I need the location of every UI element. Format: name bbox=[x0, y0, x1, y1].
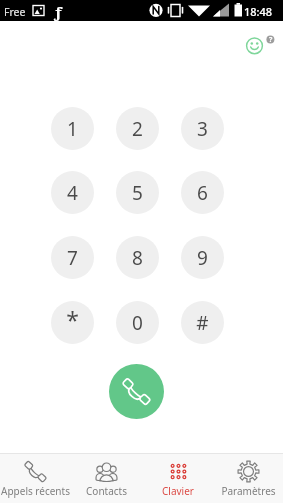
staticText: 0 bbox=[132, 310, 143, 336]
button[interactable]: Clavier bbox=[142, 454, 213, 503]
button[interactable]: # bbox=[181, 301, 224, 344]
button[interactable]: 0 bbox=[116, 301, 159, 344]
button[interactable]: Envoyer un avis bbox=[243, 33, 279, 69]
staticText: ? bbox=[269, 35, 273, 45]
staticText: 7 bbox=[67, 245, 78, 271]
button[interactable]: 6 bbox=[181, 171, 224, 214]
staticText: 5 bbox=[132, 180, 143, 206]
button[interactable]: * bbox=[51, 301, 94, 344]
button[interactable]: 2 bbox=[116, 107, 159, 150]
staticText: # bbox=[196, 310, 209, 336]
staticText: 8 bbox=[132, 245, 143, 271]
button[interactable]: 3 bbox=[181, 107, 224, 150]
staticText: Paramètres bbox=[221, 484, 276, 498]
staticText: 18:48 bbox=[244, 4, 273, 19]
staticText: 1 bbox=[67, 116, 78, 142]
button[interactable]: Contacts bbox=[71, 454, 142, 503]
button[interactable]: 8 bbox=[116, 236, 159, 279]
staticText: ƒ bbox=[54, 2, 62, 22]
button[interactable]: Appels récents bbox=[0, 454, 71, 503]
staticText: 9 bbox=[197, 245, 208, 271]
button[interactable]: 9 bbox=[181, 236, 224, 279]
staticText: Free bbox=[4, 5, 26, 19]
staticText: * bbox=[66, 304, 79, 335]
staticText: Appels récents bbox=[1, 484, 70, 498]
button[interactable]: 1 bbox=[51, 107, 94, 150]
staticText: 4 bbox=[67, 180, 78, 206]
button[interactable]: Appeler bbox=[109, 364, 164, 419]
button[interactable]: 4 bbox=[51, 171, 94, 214]
staticText: Clavier bbox=[162, 484, 194, 498]
button[interactable]: 5 bbox=[116, 171, 159, 214]
staticText: Contacts bbox=[86, 484, 127, 498]
staticText: 6 bbox=[197, 180, 208, 206]
staticText: 3 bbox=[197, 116, 208, 142]
button[interactable]: 7 bbox=[51, 236, 94, 279]
button[interactable]: Paramètres bbox=[213, 454, 283, 503]
staticText: 2 bbox=[132, 116, 143, 142]
